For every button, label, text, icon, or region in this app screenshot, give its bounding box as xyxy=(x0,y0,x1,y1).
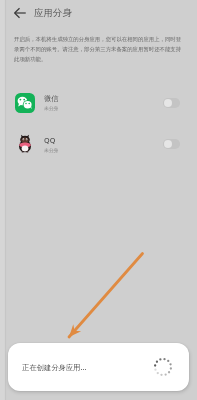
button[interactable]: Back xyxy=(10,3,30,23)
button[interactable]: Toggle app twin xyxy=(163,139,180,149)
staticText: QQ xyxy=(44,135,56,145)
staticText: 开启后，本机将生成独立的分身应用，您可以在相同的应用上，同时登录两个不同的账号。… xyxy=(14,36,186,63)
button[interactable]: Toggle app twin xyxy=(163,98,180,108)
button[interactable]: 微信 xyxy=(0,82,197,123)
staticText: 正在创建分身应用… xyxy=(22,362,87,372)
staticText: 未分身 xyxy=(44,147,59,153)
button[interactable]: QQ xyxy=(0,123,197,164)
staticText: 应用分身 xyxy=(34,7,72,19)
staticText: 微信 xyxy=(44,94,59,103)
staticText: 未分身 xyxy=(44,105,59,111)
